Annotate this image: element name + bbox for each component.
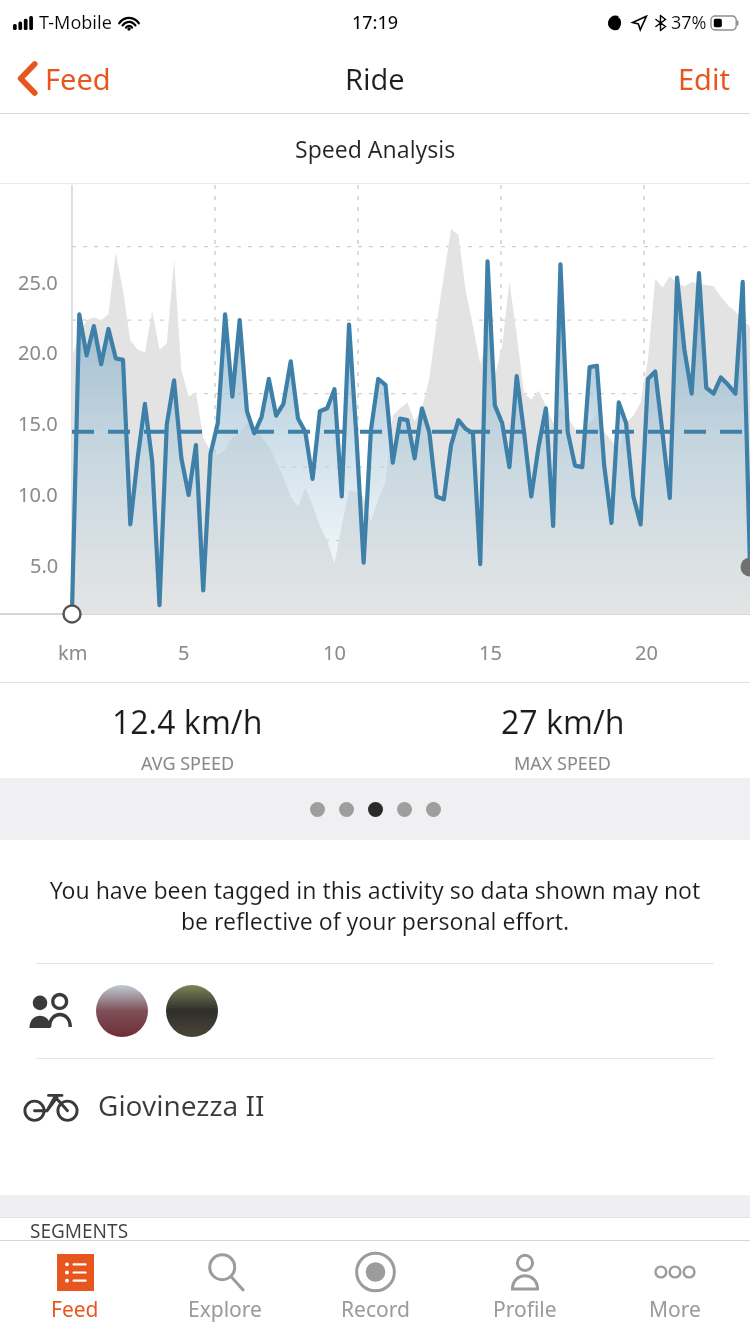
button[interactable]: Feed [0,51,125,106]
staticText: 5 [178,639,190,666]
staticText: You have been tagged in this activity so… [40,874,710,937]
staticText: 27 km/h [501,700,625,744]
staticText: Record [341,1295,410,1324]
staticText: 12.4 km/h [112,700,263,744]
staticText: Profile [493,1295,557,1324]
staticText: AVG SPEED [141,751,235,776]
staticText: Feed [51,1295,99,1324]
staticText: 17:19 [352,10,399,35]
button[interactable] [397,802,412,817]
staticText: 37% [671,10,707,35]
staticText: 10.0 [18,481,58,508]
staticText: Giovinezza II [98,1086,265,1124]
button[interactable]: Profile [450,1241,600,1333]
button[interactable]: Explore [150,1241,300,1333]
staticText: 5.0 [30,552,59,579]
staticText: 20 [635,639,658,666]
staticText: Speed Analysis [295,133,456,164]
button[interactable] [0,964,750,1058]
staticText: 15 [479,639,502,666]
staticText: km [58,639,88,666]
button[interactable]: More [600,1241,750,1333]
button[interactable] [310,802,325,817]
button[interactable] [426,802,441,817]
staticText: MAX SPEED [514,751,611,776]
staticText: Explore [188,1295,262,1324]
staticText: 10 [323,639,346,666]
button[interactable] [368,802,383,817]
button[interactable]: Edit [658,51,750,106]
button[interactable]: Record [300,1241,450,1333]
staticText: Edit [678,59,730,98]
staticText: SEGMENTS [30,1218,129,1240]
staticText: 20.0 [18,339,58,366]
button[interactable]: Giovinezza II [0,1059,750,1151]
staticText: Feed [45,59,111,98]
staticText: More [649,1295,701,1324]
button[interactable]: Feed [0,1241,150,1333]
staticText: Ride [345,59,405,98]
button[interactable] [339,802,354,817]
staticText: 15.0 [18,410,58,437]
staticText: 25.0 [18,269,58,296]
staticText: T-Mobile [39,10,112,35]
